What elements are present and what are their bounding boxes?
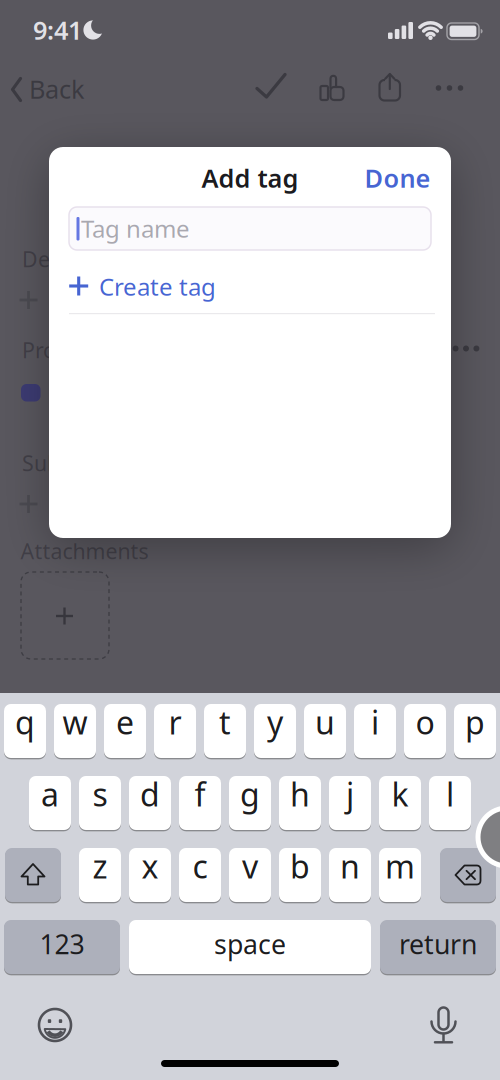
staticText: j	[346, 773, 354, 815]
button[interactable]: n	[329, 847, 371, 903]
button[interactable]: t	[204, 703, 246, 759]
button[interactable]: b	[279, 847, 321, 903]
staticText: 9:41	[33, 13, 82, 47]
staticText: g	[240, 773, 260, 815]
button[interactable]: y	[254, 703, 296, 759]
button[interactable]: Share	[367, 65, 411, 109]
button[interactable]: h	[279, 775, 321, 831]
staticText: z	[92, 845, 107, 887]
staticText: l	[446, 773, 454, 815]
button[interactable]: Like	[310, 65, 354, 109]
staticText: i	[371, 701, 379, 743]
staticText: Create tag	[99, 271, 216, 302]
button[interactable]: Mark complete	[249, 65, 293, 109]
button[interactable]: return	[380, 919, 496, 975]
button[interactable]: g	[229, 775, 271, 831]
button[interactable]: p	[454, 703, 496, 759]
staticText: y	[267, 701, 283, 743]
button[interactable]: c	[179, 847, 221, 903]
button[interactable]: r	[154, 703, 196, 759]
staticText: Back	[29, 72, 85, 106]
staticText: e	[116, 701, 134, 743]
staticText: w	[62, 701, 87, 743]
staticText: p	[465, 701, 485, 743]
staticText: u	[315, 701, 335, 743]
button[interactable]: a	[29, 775, 71, 831]
staticText: Tag name	[81, 213, 190, 244]
staticText: return	[399, 926, 477, 962]
staticText: v	[242, 845, 258, 887]
staticText: s	[92, 773, 107, 815]
staticText: Done	[364, 161, 430, 195]
staticText: a	[41, 773, 59, 815]
button[interactable]: f	[179, 775, 221, 831]
staticText: Subtasks	[22, 449, 111, 477]
button[interactable]: More options	[427, 66, 471, 110]
button[interactable]: j	[329, 775, 371, 831]
button[interactable]: e	[104, 703, 146, 759]
staticText: h	[290, 773, 310, 815]
button[interactable]: 123	[4, 919, 120, 975]
button[interactable]: x	[129, 847, 171, 903]
button[interactable]: Back	[0, 64, 90, 114]
button[interactable]: o	[404, 703, 446, 759]
staticText: k	[391, 773, 408, 815]
staticText: b	[290, 845, 310, 887]
staticText: Description	[22, 245, 138, 273]
button[interactable]: space	[129, 919, 371, 975]
button[interactable]: w	[54, 703, 96, 759]
button[interactable]: l	[429, 775, 471, 831]
button[interactable]: Shift	[5, 847, 61, 903]
button[interactable]: Create tag	[69, 267, 409, 305]
staticText: x	[141, 845, 158, 887]
button[interactable]: u	[304, 703, 346, 759]
staticText: Projects	[22, 336, 102, 364]
staticText: d	[140, 773, 160, 815]
button[interactable]: v	[229, 847, 271, 903]
button[interactable]: z	[79, 847, 121, 903]
staticText: q	[15, 701, 35, 743]
button[interactable]: Dictate	[421, 1003, 465, 1047]
button[interactable]: s	[79, 775, 121, 831]
staticText: m	[385, 845, 415, 887]
button[interactable]: m	[379, 847, 421, 903]
button[interactable]: i	[354, 703, 396, 759]
staticText: Attachments	[20, 537, 148, 565]
button[interactable]: d	[129, 775, 171, 831]
staticText: Add tag	[201, 161, 298, 195]
staticText: t	[219, 701, 231, 743]
staticText: n	[340, 845, 360, 887]
staticText: r	[168, 701, 181, 743]
staticText: o	[415, 701, 434, 743]
button[interactable]: k	[379, 775, 421, 831]
staticText: c	[192, 845, 207, 887]
button[interactable]: Emoji	[33, 1003, 77, 1047]
staticText: f	[194, 773, 205, 815]
staticText: space	[214, 926, 286, 962]
button[interactable]: q	[4, 703, 46, 759]
staticText: 123	[39, 926, 84, 962]
button[interactable]: Delete	[440, 847, 496, 903]
button[interactable]: Done	[330, 161, 430, 195]
button[interactable]: Tag name	[69, 207, 431, 250]
